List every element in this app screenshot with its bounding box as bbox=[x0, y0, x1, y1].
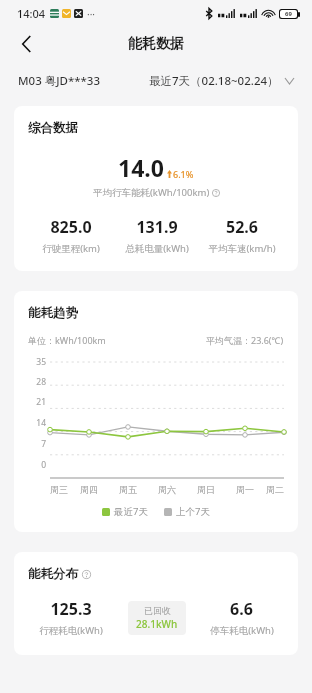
staticText: 69 bbox=[285, 10, 292, 18]
staticText: 单位：kWh/100km bbox=[28, 334, 106, 346]
button[interactable]: 最近7天 bbox=[102, 505, 148, 518]
staticText: 6.1% bbox=[173, 168, 194, 180]
staticText: 14.0 bbox=[118, 152, 164, 183]
staticText: 28.1kWh bbox=[136, 617, 178, 631]
staticText: 最近7天（02.18~02.24） bbox=[149, 73, 279, 89]
staticText: 平均车速(km/h) bbox=[208, 242, 276, 255]
staticText: 上个7天 bbox=[176, 505, 210, 518]
button[interactable]: 最近7天（02.18~02.24） bbox=[149, 73, 294, 89]
staticText: 周二 bbox=[266, 484, 284, 495]
staticText: 825.0 bbox=[50, 216, 92, 238]
staticText: 14 bbox=[36, 417, 46, 429]
staticText: 131.9 bbox=[136, 216, 178, 238]
button[interactable]: M03 粤JD***33 bbox=[18, 73, 101, 89]
staticText: 35 bbox=[36, 356, 46, 368]
staticText: 7 bbox=[41, 438, 46, 450]
staticText: 周四 bbox=[80, 484, 98, 495]
staticText: 14:04 bbox=[17, 6, 46, 21]
staticText: 能耗数据 bbox=[128, 35, 184, 53]
staticText: 最近7天 bbox=[114, 505, 148, 518]
staticText: 总耗电量(kWh) bbox=[125, 242, 189, 255]
staticText: M03 粤JD***33 bbox=[18, 73, 101, 89]
staticText: 0 bbox=[41, 459, 46, 471]
staticText: 行程耗电(kWh) bbox=[39, 624, 103, 637]
button[interactable]: 上个7天 bbox=[164, 505, 210, 518]
staticText: 周六 bbox=[158, 484, 176, 495]
staticText: 综合数据 bbox=[28, 120, 78, 136]
staticText: 能耗分布 bbox=[28, 566, 78, 582]
staticText: 125.3 bbox=[50, 598, 92, 620]
staticText: 已回收 bbox=[144, 605, 171, 616]
button[interactable]: Back bbox=[8, 26, 44, 62]
staticText: 平均行车能耗(kWh/100km) bbox=[93, 186, 210, 199]
staticText: 停车耗电(kWh) bbox=[210, 624, 274, 637]
staticText: 52.6 bbox=[226, 216, 258, 238]
staticText: ··· bbox=[87, 7, 96, 21]
staticText: 周三 bbox=[50, 484, 68, 495]
staticText: 28 bbox=[36, 376, 46, 388]
staticText: 周五 bbox=[119, 484, 137, 495]
staticText: 6.6 bbox=[230, 598, 253, 620]
staticText: 能耗趋势 bbox=[28, 305, 78, 321]
staticText: 周一 bbox=[236, 484, 254, 495]
staticText: 周日 bbox=[197, 484, 215, 495]
staticText: 平均气温：23.6(℃) bbox=[206, 334, 284, 346]
staticText: 行驶里程(km) bbox=[42, 242, 100, 255]
staticText: 21 bbox=[36, 396, 46, 408]
